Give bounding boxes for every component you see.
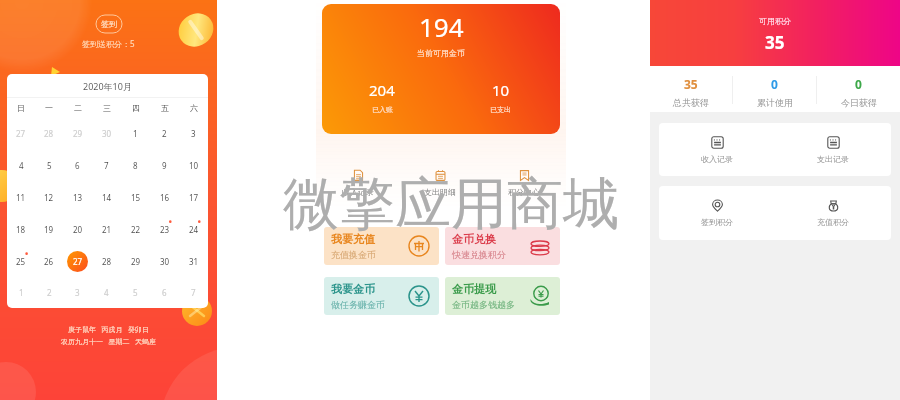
button[interactable]: 收入记录: [332, 169, 384, 197]
staticText: 28: [44, 128, 54, 139]
button[interactable]: 7: [92, 149, 121, 181]
button[interactable]: 27: [63, 245, 92, 277]
button[interactable]: 1: [121, 117, 150, 149]
button[interactable]: 10: [179, 149, 208, 181]
button[interactable]: 17: [179, 181, 208, 213]
button[interactable]: 8: [121, 149, 150, 181]
button[interactable]: 15: [121, 181, 150, 213]
button[interactable]: 25: [7, 245, 35, 277]
staticText: 签到送积分：5: [82, 38, 135, 49]
button[interactable]: 我要金币: [324, 277, 439, 315]
button[interactable]: 30: [92, 117, 121, 149]
button[interactable]: 金币兑换: [445, 227, 560, 265]
button[interactable]: 18: [7, 213, 35, 245]
button[interactable]: 7: [179, 277, 208, 308]
staticText: 20: [73, 224, 83, 235]
button[interactable]: 30: [150, 245, 179, 277]
button[interactable]: 19: [35, 213, 63, 245]
staticText: 31: [189, 256, 199, 267]
staticText: 35: [684, 76, 698, 92]
staticText: 204: [369, 80, 395, 100]
button[interactable]: 27: [7, 117, 35, 149]
staticText: 已入账: [372, 105, 393, 114]
button[interactable]: 0: [817, 66, 900, 112]
button[interactable]: 金币提现: [445, 277, 560, 315]
staticText: 35: [765, 31, 785, 54]
button[interactable]: 35: [650, 66, 732, 112]
staticText: 194: [419, 9, 464, 44]
button[interactable]: 21: [92, 213, 121, 245]
button[interactable]: 4: [7, 149, 35, 181]
staticText: 25: [16, 256, 26, 267]
button[interactable]: 14: [92, 181, 121, 213]
button[interactable]: 22: [121, 213, 150, 245]
button[interactable]: 5: [121, 277, 150, 308]
staticText: 4: [19, 160, 24, 171]
staticText: 已支出: [490, 105, 511, 114]
staticText: 5: [47, 160, 52, 171]
staticText: 5: [133, 287, 138, 298]
staticText: 金币越多钱越多: [452, 299, 515, 310]
staticText: 7: [104, 160, 109, 171]
button[interactable]: 支出记录: [775, 123, 891, 176]
button[interactable]: 签到: [96, 15, 122, 33]
button[interactable]: 11: [7, 181, 35, 213]
staticText: 今日获得: [841, 97, 877, 108]
staticText: 3: [191, 128, 196, 139]
staticText: 27: [73, 256, 83, 267]
staticText: 2: [47, 287, 52, 298]
staticText: 22: [131, 224, 141, 235]
button[interactable]: 3: [179, 117, 208, 149]
button[interactable]: 23: [150, 213, 179, 245]
staticText: 28: [102, 256, 112, 267]
button[interactable]: 签到积分: [659, 186, 775, 240]
button[interactable]: 2: [35, 277, 63, 308]
button[interactable]: 3: [63, 277, 92, 308]
button[interactable]: 充值积分: [775, 186, 891, 240]
staticText: 26: [44, 256, 54, 267]
button[interactable]: 29: [121, 245, 150, 277]
button[interactable]: 28: [35, 117, 63, 149]
staticText: 14: [102, 192, 112, 203]
staticText: 1: [19, 287, 24, 298]
staticText: 一: [45, 103, 53, 113]
button[interactable]: 16: [150, 181, 179, 213]
button[interactable]: 29: [63, 117, 92, 149]
staticText: 充值换金币: [331, 249, 376, 260]
staticText: 农历九月十一 星期二 天蝎座: [61, 337, 156, 347]
button[interactable]: 我要充值: [324, 227, 439, 265]
staticText: 日: [17, 103, 25, 113]
button[interactable]: 0: [733, 66, 816, 112]
staticText: 12: [44, 192, 54, 203]
button[interactable]: 24: [179, 213, 208, 245]
button[interactable]: 6: [63, 149, 92, 181]
staticText: 当前可用金币: [417, 48, 465, 58]
button[interactable]: 积分中心: [498, 169, 550, 197]
staticText: 29: [131, 256, 141, 267]
button[interactable]: 28: [92, 245, 121, 277]
staticText: 总共获得: [673, 97, 709, 108]
button[interactable]: 26: [35, 245, 63, 277]
button[interactable]: 4: [92, 277, 121, 308]
staticText: 10: [189, 160, 199, 171]
button[interactable]: 6: [150, 277, 179, 308]
staticText: 1: [133, 128, 138, 139]
button[interactable]: 20: [63, 213, 92, 245]
staticText: 收入记录: [701, 154, 733, 164]
staticText: 我要金币: [331, 282, 375, 296]
staticText: 8: [133, 160, 138, 171]
staticText: 24: [189, 224, 199, 235]
button[interactable]: 9: [150, 149, 179, 181]
button[interactable]: 1: [7, 277, 35, 308]
button[interactable]: 13: [63, 181, 92, 213]
button[interactable]: 支出明细: [414, 169, 466, 197]
button[interactable]: 5: [35, 149, 63, 181]
staticText: 13: [73, 192, 83, 203]
staticText: 15: [131, 192, 141, 203]
staticText: 我要充值: [331, 232, 375, 246]
button[interactable]: 2: [150, 117, 179, 149]
button[interactable]: 31: [179, 245, 208, 277]
button[interactable]: 12: [35, 181, 63, 213]
staticText: 累计使用: [757, 97, 793, 108]
button[interactable]: 收入记录: [659, 123, 775, 176]
